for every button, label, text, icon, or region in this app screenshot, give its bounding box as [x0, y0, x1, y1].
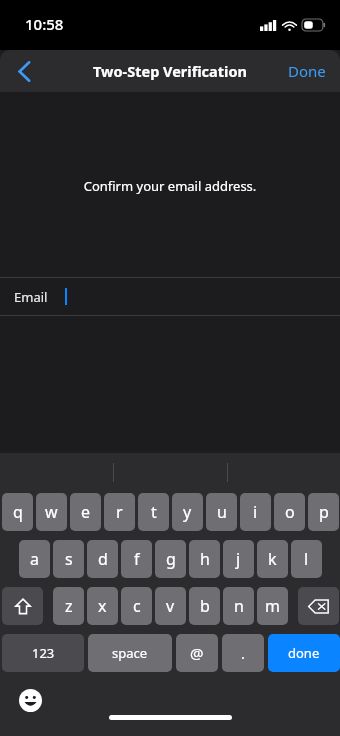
- button[interactable]: r: [104, 493, 135, 531]
- staticText: 10:58: [25, 14, 64, 34]
- staticText: n: [234, 595, 244, 617]
- staticText: .: [241, 643, 246, 663]
- staticText: w: [45, 501, 58, 523]
- staticText: @: [190, 643, 204, 663]
- staticText: h: [200, 548, 210, 570]
- button[interactable]: w: [36, 493, 67, 531]
- staticText: a: [30, 548, 39, 570]
- staticText: 123: [32, 644, 55, 662]
- button[interactable]: n: [223, 587, 254, 625]
- staticText: t: [151, 501, 157, 523]
- button[interactable]: s: [53, 540, 84, 578]
- staticText: v: [166, 595, 175, 617]
- staticText: b: [200, 595, 210, 617]
- button[interactable]: e: [70, 493, 101, 531]
- staticText: Two-Step Verification: [93, 61, 247, 81]
- staticText: u: [217, 501, 227, 523]
- button[interactable]: b: [189, 587, 220, 625]
- button[interactable]: h: [189, 540, 220, 578]
- staticText: Confirm your email address.: [0, 177, 340, 195]
- button[interactable]: Backspace: [298, 587, 339, 625]
- button[interactable]: done: [268, 634, 340, 672]
- staticText: m: [265, 595, 280, 617]
- button[interactable]: Emoji: [17, 687, 43, 713]
- staticText: r: [116, 501, 123, 523]
- button[interactable]: j: [223, 540, 254, 578]
- button[interactable]: m: [257, 587, 288, 625]
- staticText: g: [166, 548, 176, 570]
- staticText: q: [13, 501, 23, 523]
- staticText: Email: [14, 288, 48, 306]
- button[interactable]: o: [274, 493, 305, 531]
- button[interactable]: y: [172, 493, 203, 531]
- button[interactable]: Shift: [2, 587, 43, 625]
- staticText: done: [288, 644, 320, 662]
- button[interactable]: k: [257, 540, 288, 578]
- button[interactable]: Back: [0, 50, 48, 92]
- button[interactable]: Email: [0, 278, 340, 315]
- button[interactable]: x: [87, 587, 118, 625]
- staticText: z: [65, 595, 73, 617]
- staticText: e: [81, 501, 91, 523]
- button[interactable]: c: [121, 587, 152, 625]
- staticText: Done: [288, 61, 326, 81]
- staticText: j: [236, 548, 241, 570]
- staticText: c: [133, 595, 141, 617]
- button[interactable]: p: [308, 493, 339, 531]
- button[interactable]: f: [121, 540, 152, 578]
- staticText: i: [253, 501, 258, 523]
- staticText: f: [134, 548, 140, 570]
- button[interactable]: @: [176, 634, 218, 672]
- staticText: s: [65, 548, 73, 570]
- staticText: space: [112, 644, 148, 662]
- staticText: d: [98, 548, 108, 570]
- button[interactable]: a: [19, 540, 50, 578]
- button[interactable]: l: [291, 540, 322, 578]
- staticText: y: [183, 501, 192, 523]
- staticText: k: [268, 548, 277, 570]
- staticText: l: [304, 548, 309, 570]
- staticText: p: [319, 501, 329, 523]
- button[interactable]: t: [138, 493, 169, 531]
- button[interactable]: v: [155, 587, 186, 625]
- staticText: x: [98, 595, 107, 617]
- button[interactable]: d: [87, 540, 118, 578]
- staticText: o: [285, 501, 295, 523]
- button[interactable]: 123: [2, 634, 84, 672]
- button[interactable]: i: [240, 493, 271, 531]
- button[interactable]: u: [206, 493, 237, 531]
- button[interactable]: z: [53, 587, 84, 625]
- button[interactable]: q: [2, 493, 33, 531]
- button[interactable]: space: [88, 634, 172, 672]
- button[interactable]: Done: [274, 50, 340, 92]
- button[interactable]: .: [222, 634, 264, 672]
- button[interactable]: g: [155, 540, 186, 578]
